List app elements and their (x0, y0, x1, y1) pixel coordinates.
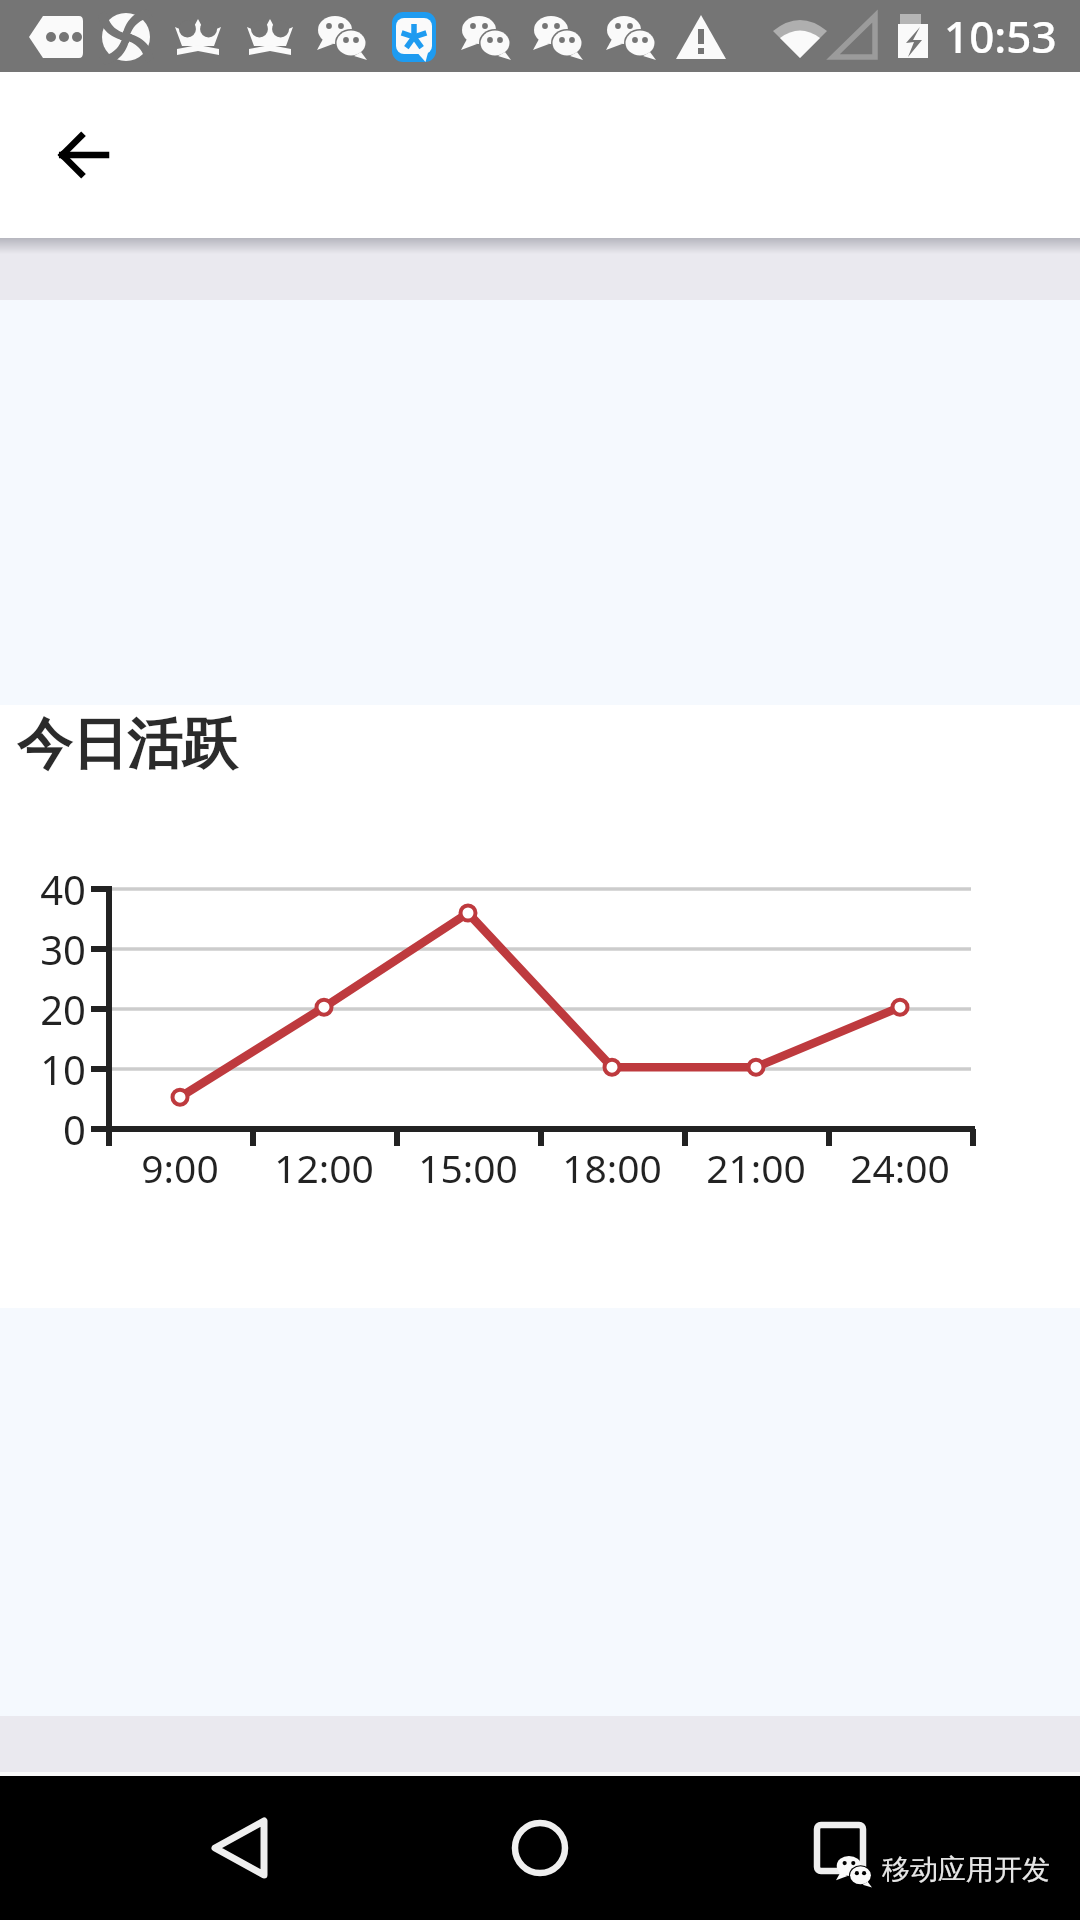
button[interactable]: Recents (785, 1793, 895, 1903)
staticText: 10 (0, 1042, 86, 1096)
button[interactable]: Back (185, 1793, 295, 1903)
button[interactable]: Home (485, 1793, 595, 1903)
staticText: 10:53 (944, 6, 1057, 66)
staticText: 今日活跃 (17, 710, 237, 779)
staticText: 12:00 (252, 1141, 396, 1194)
staticText: 21:00 (684, 1141, 828, 1194)
button[interactable]: Back (36, 107, 132, 203)
staticText: 9:00 (108, 1141, 252, 1194)
staticText: 20 (0, 982, 86, 1036)
staticText: 18:00 (540, 1141, 684, 1194)
staticText: 30 (0, 922, 86, 976)
staticText: 移动应用开发 (882, 1852, 1050, 1887)
staticText: 0 (0, 1102, 86, 1156)
staticText: 40 (0, 862, 86, 916)
staticText: 15:00 (396, 1141, 540, 1194)
staticText: 24:00 (828, 1141, 972, 1194)
